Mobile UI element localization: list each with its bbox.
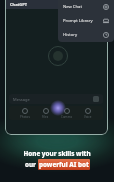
staticText: History	[63, 32, 78, 38]
staticText: Camera	[61, 115, 72, 119]
staticText: Message	[13, 97, 30, 102]
staticText: ChatGPT	[10, 2, 27, 7]
staticText: our	[25, 160, 38, 169]
button[interactable]: Voice	[83, 107, 93, 120]
staticText: New Chat	[63, 4, 82, 10]
other: ChatGPT logo	[48, 46, 68, 66]
button[interactable]: Photos	[19, 107, 31, 120]
button[interactable]: Message	[9, 94, 103, 104]
staticText: Prompt Library	[63, 18, 93, 24]
staticText: Files	[42, 115, 49, 119]
button[interactable]: Camera	[60, 107, 73, 120]
staticText: powerful AI bot	[39, 160, 89, 169]
staticText: Voice	[84, 115, 92, 119]
button[interactable]: History	[58, 28, 114, 42]
button[interactable]: Prompt Library	[58, 14, 114, 28]
staticText: Hone your skills with	[23, 149, 91, 158]
button[interactable]: Files	[41, 107, 50, 120]
button[interactable]: New Chat	[58, 0, 114, 14]
staticText: Photos	[20, 115, 30, 119]
other: Send	[93, 96, 99, 102]
